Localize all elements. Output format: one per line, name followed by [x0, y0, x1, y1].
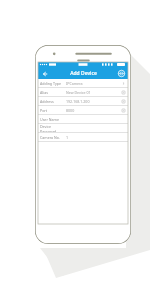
button[interactable]: Port	[38, 106, 128, 115]
button[interactable]: Camera No.	[38, 133, 128, 142]
button[interactable]: Device Password	[38, 124, 128, 133]
staticText: Port	[40, 108, 64, 113]
staticText: New Device 01	[66, 90, 120, 95]
button[interactable]: Adding Type	[38, 79, 128, 88]
button[interactable]: Alias	[38, 88, 128, 97]
button[interactable]: Back	[39, 68, 50, 79]
staticText: User Name	[40, 117, 64, 122]
staticText: Adding Type	[40, 81, 64, 86]
staticText: 8000	[66, 108, 120, 113]
staticText: Alias	[40, 90, 64, 95]
staticText: Add Device	[70, 70, 97, 77]
button[interactable]: Scan QR code	[116, 68, 127, 79]
staticText: 1	[66, 135, 120, 140]
staticText: Address	[40, 99, 64, 104]
staticText: IPCamera	[66, 81, 120, 86]
staticText: Camera No.	[40, 135, 64, 140]
staticText: 192.168.1.200	[66, 99, 120, 104]
button[interactable]: Address	[38, 97, 128, 106]
staticText: Device Password	[40, 124, 64, 132]
button[interactable]: User Name	[38, 115, 128, 124]
